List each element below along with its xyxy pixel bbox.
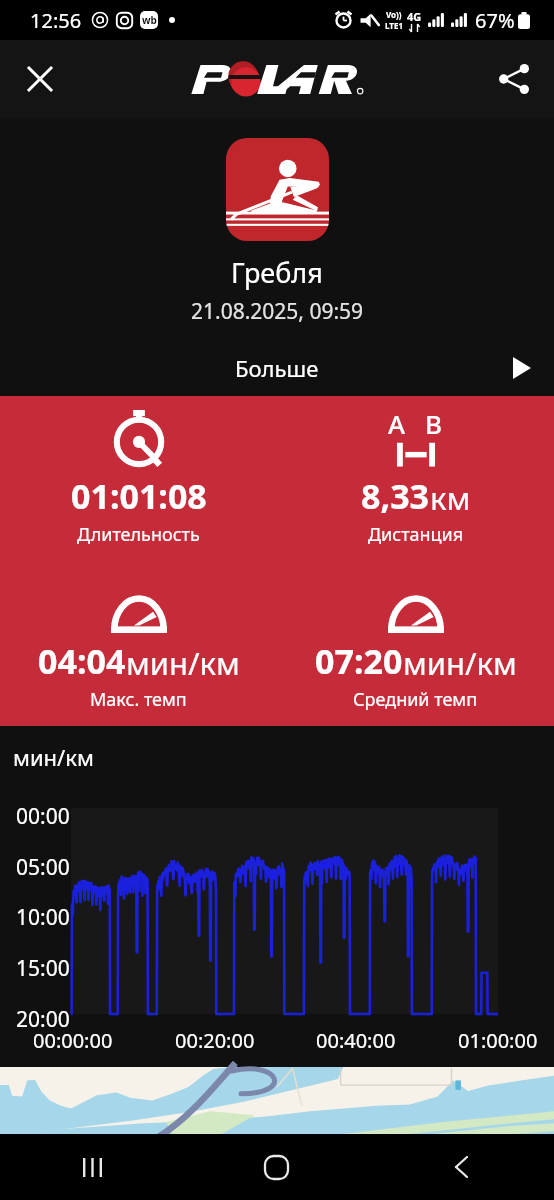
staticText: 8,33 [361,473,430,519]
staticText: Длительность [77,522,200,547]
staticText: 21.08.2025, 09:59 [191,297,364,326]
staticText: A [388,406,406,441]
staticText: Vo)) [386,9,402,20]
staticText: 10:00 [16,903,70,932]
other: Distance [388,410,444,468]
staticText: 00:40:00 [316,1027,396,1054]
staticText: LTE1 [385,20,403,31]
staticText: B [425,406,443,441]
button[interactable]: Home [184,1134,369,1200]
staticText: 20:00 [16,1005,70,1034]
staticText: Больше [235,353,319,383]
staticText: мин/км [13,742,94,772]
staticText: мин/км [126,642,240,684]
staticText: 07:20 [315,638,403,684]
staticText: 00:00:00 [33,1027,113,1054]
button[interactable]: Recent apps [0,1134,184,1200]
staticText: мин/км [403,642,517,684]
button[interactable]: Distance [277,396,554,561]
other: Avg pace [388,575,444,633]
button[interactable]: Map [0,1067,554,1134]
staticText: wb [142,13,157,27]
staticText: Макс. темп [90,687,187,712]
staticText: 15:00 [16,954,70,983]
button[interactable]: Close [12,51,68,107]
staticText: 12:56 [30,7,82,34]
staticText: 00:20:00 [175,1027,255,1054]
staticText: 05:00 [16,853,70,882]
staticText: Гребля [231,254,323,291]
staticText: 67% [475,7,515,34]
staticText: км [430,477,471,519]
staticText: Дистанция [368,522,464,547]
button[interactable]: Avg pace [277,561,554,726]
staticText: 4G [407,9,422,24]
other: Max pace [111,575,167,633]
staticText: 01:00:00 [458,1027,538,1054]
staticText: 01:01:08 [71,473,207,519]
staticText: Средний темп [353,687,478,712]
staticText: 04:04 [38,638,126,684]
button[interactable]: Max pace [0,561,277,726]
button[interactable]: Больше [0,340,554,396]
other: Duration [111,410,167,468]
button[interactable]: Duration [0,396,277,561]
button[interactable]: Rowing [226,138,329,241]
button[interactable]: Share [486,51,542,107]
button[interactable]: Back [369,1134,554,1200]
staticText: 00:00 [16,802,70,831]
